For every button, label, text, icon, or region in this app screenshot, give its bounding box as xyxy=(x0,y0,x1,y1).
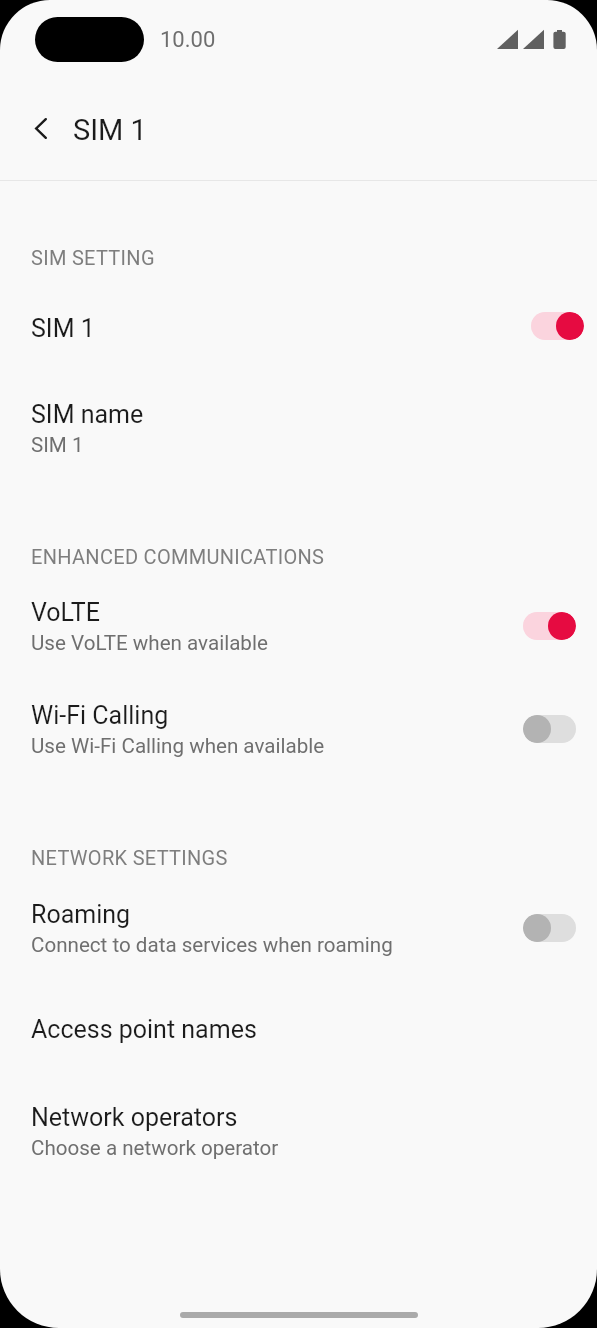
other: Signal and battery xyxy=(494,29,570,51)
staticText: SIM name xyxy=(31,400,144,429)
button[interactable]: Back xyxy=(20,107,62,149)
button[interactable]: VoLTE xyxy=(0,598,597,655)
staticText: Choose a network operator xyxy=(31,1136,279,1160)
button[interactable]: SIM name xyxy=(0,400,597,457)
staticText: ENHANCED COMMUNICATIONS xyxy=(31,545,325,568)
button[interactable]: Switch on xyxy=(531,312,584,340)
staticText: Access point names xyxy=(31,1015,257,1044)
staticText: Use Wi-Fi Calling when available xyxy=(31,734,325,758)
staticText: Use VoLTE when available xyxy=(31,631,268,655)
button[interactable]: Network operators xyxy=(0,1103,597,1160)
staticText: Connect to data services when roaming xyxy=(31,933,393,957)
staticText: NETWORK SETTINGS xyxy=(31,846,228,869)
staticText: Roaming xyxy=(31,900,131,929)
staticText: SIM SETTING xyxy=(31,246,155,269)
staticText: 10.00 xyxy=(160,27,216,53)
button[interactable]: SIM 1 xyxy=(0,314,597,343)
staticText: SIM 1 xyxy=(31,314,95,343)
staticText: Wi-Fi Calling xyxy=(31,701,169,730)
button[interactable]: Access point names xyxy=(0,1015,597,1044)
button[interactable]: Switch off xyxy=(523,914,576,942)
staticText: VoLTE xyxy=(31,598,100,627)
staticText: SIM 1 xyxy=(73,113,147,147)
staticText: Network operators xyxy=(31,1103,238,1132)
staticText: SIM 1 xyxy=(31,433,84,457)
button[interactable]: Wi-Fi Calling xyxy=(0,701,597,758)
button[interactable]: Switch off xyxy=(523,715,576,743)
button[interactable]: Roaming xyxy=(0,900,597,957)
button[interactable]: Switch on xyxy=(523,612,576,640)
